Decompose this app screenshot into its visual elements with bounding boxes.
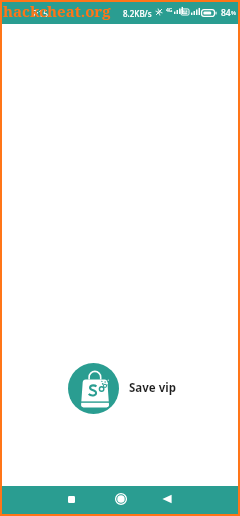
button[interactable]: Back bbox=[154, 486, 180, 512]
staticText: 4G bbox=[166, 7, 173, 14]
button[interactable]: Recent apps bbox=[58, 486, 84, 512]
staticText: hackcheat.org bbox=[3, 1, 111, 21]
other: Save vip logo bbox=[68, 363, 119, 414]
staticText: 84 bbox=[221, 7, 231, 19]
button[interactable]: Home bbox=[108, 486, 134, 512]
staticText: 7:15 bbox=[32, 8, 48, 19]
staticText: 8.2KB/s bbox=[123, 8, 152, 19]
staticText: % bbox=[231, 9, 236, 17]
button[interactable]: Save vip logo bbox=[68, 363, 176, 414]
staticText: Save vip bbox=[129, 380, 176, 396]
